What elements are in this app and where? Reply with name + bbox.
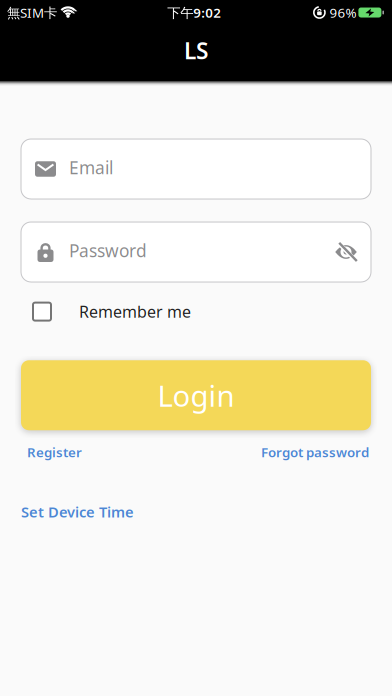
staticText: Email (69, 156, 113, 179)
staticText: Remember me (79, 301, 191, 322)
button[interactable]: Password (21, 222, 371, 282)
button[interactable]: Show password (335, 242, 371, 262)
staticText: Forgot password (261, 443, 369, 461)
staticText: Register (27, 443, 82, 461)
staticText: 無SIM卡 (7, 4, 57, 21)
button[interactable]: Register (27, 443, 82, 461)
staticText: Login (157, 376, 234, 415)
staticText: LS (184, 35, 208, 65)
button[interactable]: Forgot password (261, 443, 369, 461)
staticText: 下午9:02 (167, 4, 221, 21)
button[interactable]: Login (21, 360, 371, 430)
staticText: Set Device Time (21, 502, 134, 521)
button[interactable]: Remember me (0, 301, 392, 322)
staticText: 96% (329, 4, 356, 21)
button[interactable]: Email (21, 139, 371, 199)
button[interactable]: Set Device Time (21, 502, 134, 521)
staticText: Password (69, 239, 147, 262)
